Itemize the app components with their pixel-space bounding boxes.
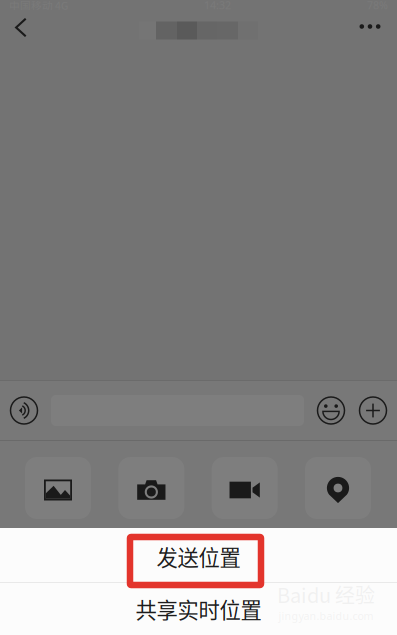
button[interactable]: More xyxy=(350,5,390,47)
button[interactable]: Location xyxy=(305,457,371,519)
staticText: 共享实时位置 xyxy=(135,594,261,624)
button[interactable]: 发送位置 xyxy=(0,528,397,582)
button[interactable]: Emoji xyxy=(317,387,345,433)
button[interactable]: Camera xyxy=(118,457,184,519)
staticText: Baidu 经验 xyxy=(277,580,375,609)
button[interactable]: Video call xyxy=(212,457,278,519)
button[interactable]: Photos xyxy=(25,457,91,519)
button[interactable]: Back xyxy=(1,6,41,48)
button[interactable]: 共享实时位置 xyxy=(0,583,397,635)
staticText: 发送位置 xyxy=(156,541,240,572)
button[interactable]: Voice message xyxy=(5,387,43,433)
button[interactable]: More actions xyxy=(359,387,387,433)
